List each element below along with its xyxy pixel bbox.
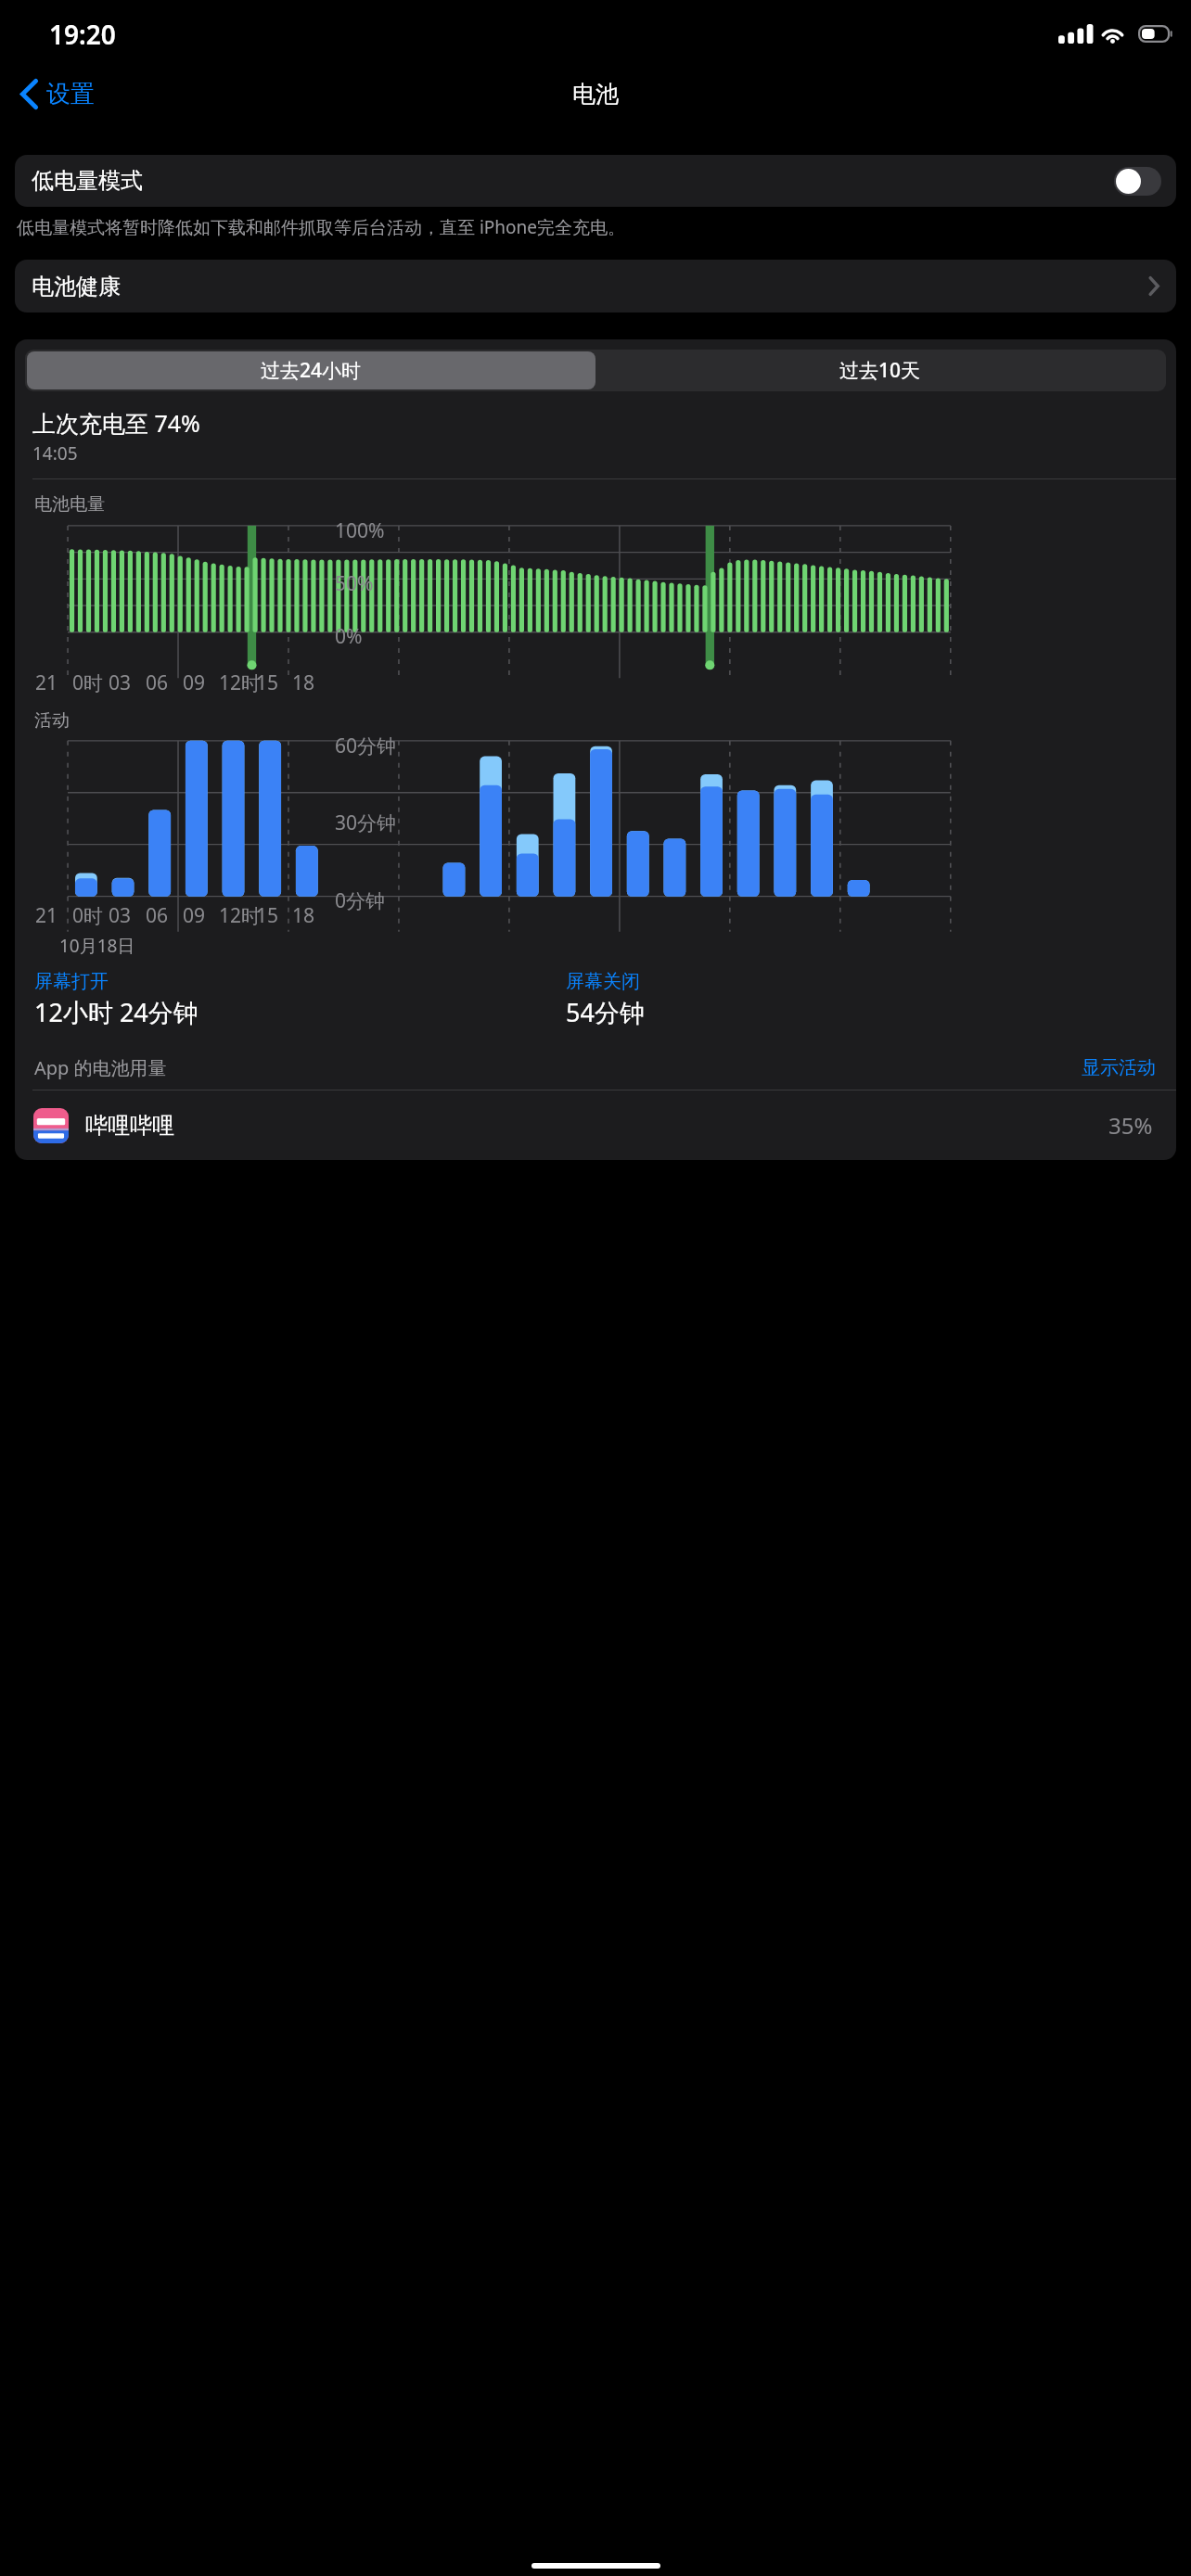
staticText: 12时 <box>219 670 262 696</box>
staticText: 100% <box>335 517 385 544</box>
staticText: 09 <box>183 902 206 929</box>
staticText: 15 <box>256 902 279 929</box>
staticText: 上次充电至 74% <box>32 407 200 439</box>
button[interactable]: 低电量模式开关 <box>1114 167 1161 196</box>
staticText: 50% <box>335 570 374 597</box>
button[interactable]: 过去10天 <box>595 351 1164 389</box>
staticText: 过去10天 <box>839 357 921 384</box>
staticText: 哔哩哔哩 <box>85 1112 174 1140</box>
staticText: 电池电量 <box>34 493 105 516</box>
staticText: 09 <box>183 670 206 696</box>
staticText: 显示活动 <box>1082 1056 1156 1079</box>
staticText: 21 <box>35 670 58 696</box>
button[interactable]: 显示活动 <box>1078 1052 1159 1083</box>
staticText: 0% <box>335 623 363 650</box>
staticText: 屏幕打开 <box>34 970 109 993</box>
staticText: 14:05 <box>32 441 78 465</box>
staticText: 10月18日 <box>59 934 135 958</box>
button[interactable]: 电池健康 <box>15 260 1176 312</box>
staticText: 低电量模式 <box>32 167 143 195</box>
staticText: 18 <box>292 670 315 696</box>
staticText: 60分钟 <box>335 733 397 759</box>
staticText: 19:20 <box>49 17 116 52</box>
staticText: 35% <box>1108 1110 1153 1141</box>
staticText: 0时 <box>72 902 104 929</box>
button[interactable]: 设置 <box>15 73 100 115</box>
staticText: 过去24小时 <box>261 357 362 384</box>
staticText: 18 <box>292 902 315 929</box>
staticText: 21 <box>35 902 58 929</box>
staticText: 06 <box>146 902 169 929</box>
staticText: 设置 <box>46 79 95 109</box>
button[interactable]: 哔哩哔哩 <box>15 1090 1176 1160</box>
staticText: 15 <box>256 670 279 696</box>
button[interactable]: 过去24小时 <box>27 351 595 389</box>
staticText: 03 <box>109 670 132 696</box>
staticText: 屏幕关闭 <box>566 970 640 993</box>
staticText: 30分钟 <box>335 810 397 836</box>
staticText: 活动 <box>34 709 70 732</box>
staticText: App 的电池用量 <box>34 1055 167 1080</box>
staticText: 12小时 24分钟 <box>34 995 198 1029</box>
staticText: 电池健康 <box>32 273 121 300</box>
staticText: 0分钟 <box>335 887 386 914</box>
staticText: 0时 <box>72 670 104 696</box>
staticText: 06 <box>146 670 169 696</box>
button[interactable]: 低电量模式 <box>15 155 1176 207</box>
staticText: 54分钟 <box>566 995 645 1029</box>
staticText: 低电量模式将暂时降低如下载和邮件抓取等后台活动，直至 iPhone完全充电。 <box>17 215 1174 239</box>
staticText: 03 <box>109 902 132 929</box>
staticText: 12时 <box>219 902 262 929</box>
staticText: 电池 <box>572 80 619 108</box>
